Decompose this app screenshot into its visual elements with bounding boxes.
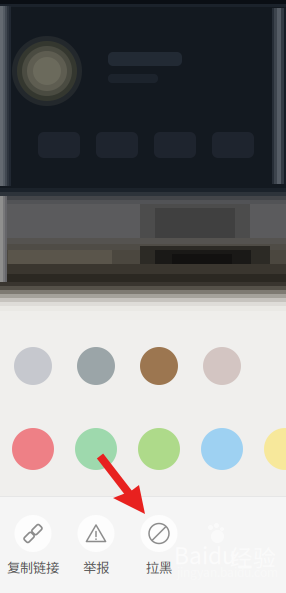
button[interactable]: Share to app (12, 428, 54, 470)
staticText: 复制链接 (7, 557, 59, 577)
staticText: 拉黑 (146, 557, 172, 577)
button[interactable]: Contact (14, 347, 52, 385)
button[interactable]: Contact (77, 347, 115, 385)
button[interactable]: 拉黑 (128, 515, 190, 577)
button[interactable]: Share to app (138, 428, 180, 470)
button[interactable]: Contact (140, 347, 178, 385)
button[interactable]: Share to app (201, 428, 243, 470)
button[interactable]: 复制链接 (2, 515, 64, 577)
button[interactable]: Share to app (264, 428, 286, 470)
staticText: 举报 (83, 557, 109, 577)
button[interactable]: Contact (203, 347, 241, 385)
button[interactable]: Share to app (75, 428, 117, 470)
button[interactable]: 举报 (65, 515, 127, 577)
